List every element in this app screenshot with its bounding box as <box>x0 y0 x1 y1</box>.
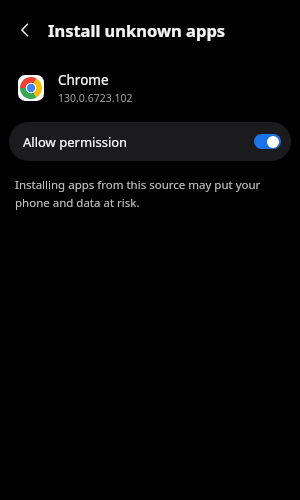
staticText: Installing apps from this source may put… <box>15 177 280 210</box>
button[interactable]: Back <box>8 13 42 47</box>
staticText: Install unknown apps <box>48 19 226 41</box>
button[interactable]: Allow permission <box>9 122 291 161</box>
button[interactable]: Chrome <box>0 60 300 116</box>
staticText: Allow permission <box>23 133 128 151</box>
staticText: 130.0.6723.102 <box>58 91 133 105</box>
staticText: Chrome <box>58 71 109 89</box>
other: Allow permission toggle, on <box>254 134 281 149</box>
